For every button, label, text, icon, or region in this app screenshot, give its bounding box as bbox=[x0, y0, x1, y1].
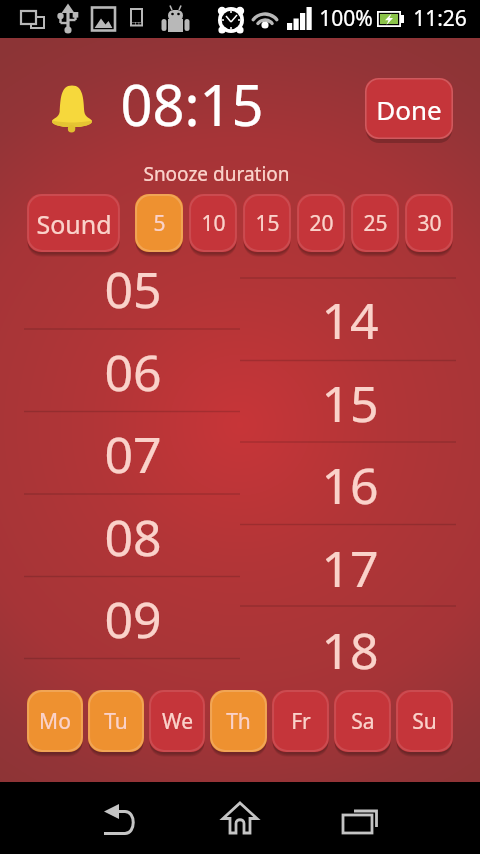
staticText: 17 bbox=[321, 534, 379, 602]
staticText: We bbox=[162, 707, 193, 736]
staticText: Mo bbox=[39, 707, 71, 736]
staticText: 10 bbox=[201, 209, 226, 238]
staticText: 20 bbox=[309, 209, 334, 238]
staticText: 07 bbox=[104, 420, 162, 488]
button[interactable]: 17 bbox=[242, 527, 458, 609]
button[interactable]: Back bbox=[80, 782, 160, 854]
button[interactable]: 18 bbox=[242, 609, 458, 691]
staticText: 15 bbox=[321, 369, 379, 437]
button[interactable]: Sound bbox=[27, 194, 120, 255]
button[interactable]: We bbox=[149, 690, 205, 755]
staticText: 08 bbox=[104, 503, 162, 571]
staticText: 05 bbox=[104, 255, 162, 323]
button[interactable]: 14 bbox=[242, 279, 458, 361]
staticText: 25 bbox=[363, 209, 388, 238]
button[interactable]: 16 bbox=[242, 444, 458, 526]
button[interactable]: 07 bbox=[13, 413, 253, 495]
button[interactable]: 06 bbox=[13, 331, 253, 413]
button[interactable]: 25 bbox=[351, 194, 399, 255]
staticText: 30 bbox=[417, 209, 442, 238]
staticText: Fr bbox=[291, 707, 311, 736]
button[interactable]: 5 bbox=[135, 194, 183, 255]
staticText: Su bbox=[412, 707, 437, 736]
staticText: Sa bbox=[351, 707, 375, 736]
button[interactable]: Home bbox=[200, 782, 280, 854]
staticText: Done bbox=[376, 92, 442, 127]
button[interactable]: 20 bbox=[297, 194, 345, 255]
button[interactable]: Sa bbox=[334, 690, 391, 755]
staticText: 08:15 bbox=[120, 66, 264, 142]
staticText: 11:26 bbox=[413, 4, 467, 33]
staticText: 14 bbox=[321, 286, 379, 354]
staticText: Sound bbox=[36, 207, 112, 241]
staticText: Th bbox=[226, 707, 251, 736]
button[interactable]: Su bbox=[396, 690, 453, 755]
button[interactable]: Recents bbox=[320, 782, 400, 854]
button[interactable]: Tu bbox=[88, 690, 144, 755]
button[interactable]: 10 bbox=[189, 194, 237, 255]
staticText: 06 bbox=[104, 338, 162, 406]
button[interactable]: 09 bbox=[13, 578, 253, 660]
button[interactable]: Done bbox=[365, 78, 453, 141]
button[interactable]: 05 bbox=[13, 248, 253, 330]
button[interactable]: 15 bbox=[243, 194, 291, 255]
staticText: 09 bbox=[104, 585, 162, 653]
button[interactable]: 30 bbox=[405, 194, 453, 255]
staticText: 100% bbox=[319, 4, 373, 33]
button[interactable]: Mo bbox=[27, 690, 83, 755]
button[interactable]: 08 bbox=[13, 496, 253, 578]
staticText: 16 bbox=[321, 451, 379, 519]
staticText: 18 bbox=[321, 616, 379, 684]
staticText: 5 bbox=[153, 209, 166, 238]
button[interactable]: 15 bbox=[242, 362, 458, 444]
button[interactable]: Th bbox=[210, 690, 267, 755]
staticText: Snooze duration bbox=[143, 161, 290, 187]
staticText: Tu bbox=[104, 707, 128, 736]
staticText: 15 bbox=[255, 209, 280, 238]
button[interactable]: Fr bbox=[272, 690, 329, 755]
